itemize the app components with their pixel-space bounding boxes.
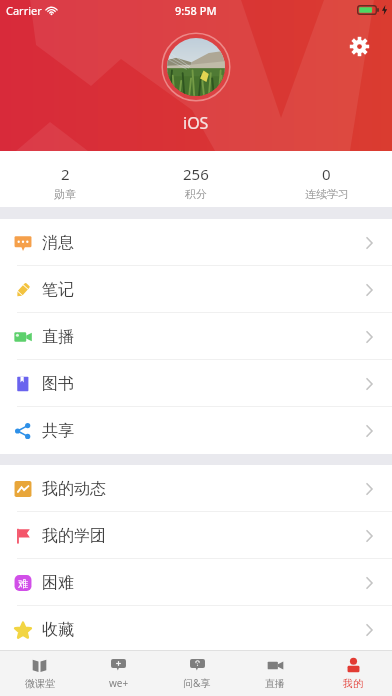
button[interactable]: 0 — [261, 151, 392, 207]
button[interactable]: 难 — [0, 559, 392, 606]
staticText: 共享 — [42, 421, 74, 441]
button[interactable]: 2 — [0, 151, 130, 207]
staticText: 积分 — [185, 187, 207, 201]
button[interactable]: 256 — [130, 151, 261, 207]
staticText: 我的学团 — [42, 526, 106, 546]
button[interactable]: we+ — [79, 650, 158, 696]
staticText: iOS — [183, 112, 209, 134]
staticText: 我的动态 — [42, 479, 106, 499]
button[interactable]: 问&享 — [158, 650, 236, 696]
button[interactable]: 我的 — [314, 650, 392, 696]
staticText: 直播 — [42, 327, 74, 347]
button[interactable]: 共享 — [0, 407, 392, 454]
staticText: 消息 — [42, 233, 74, 253]
button[interactable]: Settings — [344, 31, 374, 61]
button[interactable]: 微课堂 — [0, 650, 79, 696]
staticText: 问&享 — [183, 676, 211, 690]
staticText: 我的 — [343, 677, 363, 690]
staticText: we+ — [109, 676, 129, 690]
button[interactable]: 笔记 — [0, 266, 392, 313]
button[interactable]: 图书 — [0, 360, 392, 407]
staticText: Carrier — [6, 3, 42, 18]
staticText: 连续学习 — [305, 187, 349, 201]
staticText: 勋章 — [54, 187, 76, 201]
staticText: 笔记 — [42, 280, 74, 300]
staticText: 直播 — [265, 677, 285, 690]
button[interactable]: 消息 — [0, 219, 392, 266]
staticText: 图书 — [42, 374, 74, 394]
staticText: 2 — [61, 164, 70, 184]
staticText: 难 — [18, 577, 28, 590]
button[interactable]: 收藏 — [0, 606, 392, 653]
button[interactable]: 直播 — [0, 313, 392, 360]
button[interactable]: 我的动态 — [0, 465, 392, 512]
staticText: 9:58 PM — [175, 3, 217, 18]
staticText: 收藏 — [42, 620, 74, 640]
staticText: 微课堂 — [25, 677, 55, 690]
staticText: 困难 — [42, 573, 74, 593]
staticText: 256 — [183, 164, 209, 184]
button[interactable]: 直播 — [236, 650, 314, 696]
button[interactable]: 我的学团 — [0, 512, 392, 559]
staticText: 0 — [322, 164, 331, 184]
